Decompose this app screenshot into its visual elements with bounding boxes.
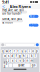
staticText: q [2, 49, 4, 53]
staticText: w [6, 49, 8, 53]
button[interactable]: go [31, 63, 37, 67]
button[interactable]: w [5, 49, 8, 53]
staticText: j [27, 54, 28, 58]
staticText: o [32, 49, 34, 53]
staticText: h [23, 54, 25, 58]
staticText: b [23, 59, 25, 62]
staticText: k [31, 54, 32, 58]
button[interactable]: h [22, 54, 25, 58]
staticText: < [2, 3, 5, 10]
staticText: Great, see you at noon [2, 17, 22, 24]
staticText: e [9, 49, 11, 53]
staticText: r [14, 49, 15, 53]
staticText: i [29, 49, 30, 53]
staticText: l [35, 54, 36, 58]
button[interactable]: k [30, 54, 33, 58]
button[interactable]: space [13, 63, 30, 67]
button[interactable]: r [13, 49, 16, 53]
staticText: s [8, 54, 9, 58]
button[interactable]: x [11, 59, 14, 62]
staticText: 123 [4, 62, 8, 69]
staticText: a [4, 54, 5, 58]
button[interactable]: j [26, 54, 29, 58]
button[interactable]: d [11, 54, 14, 58]
staticText: z [8, 59, 9, 62]
staticText: t [18, 49, 19, 53]
button[interactable]: n [26, 59, 29, 62]
staticText: f [16, 54, 17, 58]
staticText: m [30, 59, 32, 62]
button[interactable]: Back [1, 4, 6, 9]
button[interactable]: p [35, 49, 39, 53]
staticText: go [32, 63, 36, 67]
button[interactable]: o [32, 49, 35, 53]
button[interactable]: z [7, 59, 10, 62]
staticText: Yes! [30, 15, 35, 18]
staticText: u [25, 49, 27, 53]
button[interactable]: b [22, 59, 25, 62]
button[interactable]: s [7, 54, 10, 58]
button[interactable]: 123 [3, 63, 8, 67]
staticText: y [21, 49, 22, 53]
button[interactable]: l [34, 54, 37, 58]
button[interactable]: a [3, 54, 6, 58]
button[interactable]: c [15, 59, 18, 62]
button[interactable]: v [18, 59, 22, 62]
staticText: Perfect [30, 22, 37, 29]
staticText: p [36, 49, 38, 53]
staticText: Hey! Are we still on for lunch? [2, 8, 24, 16]
staticText: x [12, 59, 13, 62]
button[interactable]: i [28, 49, 31, 53]
button[interactable]: m [30, 59, 33, 62]
button[interactable]: e [9, 49, 12, 53]
button[interactable]: y [20, 49, 23, 53]
button[interactable]: t [16, 49, 20, 53]
staticText: Alex Rivera [9, 4, 30, 9]
button[interactable]: f [15, 54, 18, 58]
staticText: g [19, 54, 21, 58]
staticText: 9:41 [2, 0, 9, 5]
button[interactable]: g [18, 54, 22, 58]
staticText: d [11, 54, 13, 58]
staticText: c [16, 59, 17, 62]
button[interactable]: q [1, 49, 4, 53]
button[interactable]: u [24, 49, 27, 53]
staticText: space [18, 63, 25, 67]
staticText: n [27, 59, 29, 62]
